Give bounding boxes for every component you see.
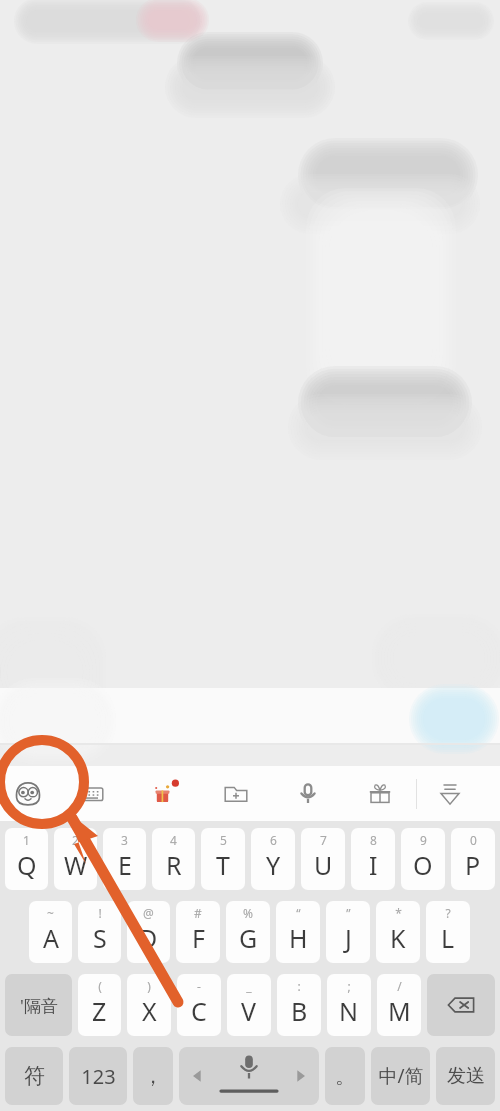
button[interactable]: / xyxy=(377,974,421,1036)
button[interactable]: “ xyxy=(276,901,320,963)
staticText: “ xyxy=(296,905,301,921)
staticText: X xyxy=(142,994,157,1028)
button[interactable]: '隔音 xyxy=(5,974,72,1036)
staticText: _ xyxy=(246,978,252,994)
button[interactable]: ~ xyxy=(29,901,72,963)
staticText: 9 xyxy=(420,832,427,848)
button[interactable]: Voice input xyxy=(272,766,344,821)
staticText: 0 xyxy=(470,832,477,848)
staticText: ; xyxy=(347,978,351,994)
button[interactable]: 4 xyxy=(152,828,195,890)
staticText: 。 xyxy=(335,1064,355,1089)
staticText: R xyxy=(166,848,182,882)
staticText: T xyxy=(216,848,230,882)
button[interactable]: 符 xyxy=(5,1047,63,1105)
button[interactable]: Space / voice input xyxy=(179,1047,319,1105)
staticText: 8 xyxy=(370,832,377,848)
staticText: '隔音 xyxy=(20,994,58,1017)
staticText: D xyxy=(139,921,158,955)
button[interactable]: : xyxy=(277,974,321,1036)
button[interactable]: 123 xyxy=(69,1047,127,1105)
button[interactable]: 6 xyxy=(251,828,295,890)
button[interactable]: # xyxy=(176,901,220,963)
staticText: 4 xyxy=(170,832,177,848)
staticText: 2 xyxy=(72,832,79,848)
staticText: O xyxy=(413,848,433,882)
button[interactable]: _ xyxy=(227,974,271,1036)
button[interactable]: 5 xyxy=(201,828,245,890)
button[interactable]: ? xyxy=(426,901,470,963)
button[interactable]: Stickers xyxy=(128,766,200,821)
button[interactable]: % xyxy=(226,901,270,963)
staticText: W xyxy=(64,848,88,882)
button[interactable]: ( xyxy=(78,974,121,1036)
staticText: 123 xyxy=(81,1063,116,1090)
button[interactable]: ; xyxy=(327,974,371,1036)
staticText: U xyxy=(314,848,333,882)
staticText: 5 xyxy=(220,832,227,848)
staticText: 中/简 xyxy=(378,1063,424,1089)
staticText: I xyxy=(369,848,378,882)
staticText: G xyxy=(239,921,258,955)
button[interactable]: ) xyxy=(127,974,171,1036)
button[interactable]: 中/简 xyxy=(371,1047,430,1105)
staticText: % xyxy=(243,905,253,921)
staticText: F xyxy=(192,921,205,955)
button[interactable]: ! xyxy=(78,901,121,963)
staticText: M xyxy=(388,994,411,1028)
button[interactable]: * xyxy=(376,901,420,963)
staticText: B xyxy=(291,994,308,1028)
staticText: 6 xyxy=(270,832,277,848)
button[interactable]: - xyxy=(177,974,221,1036)
button[interactable]: 7 xyxy=(301,828,345,890)
staticText: ) xyxy=(147,978,151,994)
staticText: * xyxy=(395,905,402,921)
staticText: ， xyxy=(143,1064,163,1089)
staticText: 3 xyxy=(121,832,128,848)
staticText: A xyxy=(43,921,59,955)
staticText: S xyxy=(93,921,107,955)
staticText: ( xyxy=(98,978,102,994)
button[interactable]: 1 xyxy=(5,828,48,890)
staticText: N xyxy=(339,994,359,1028)
button[interactable]: Keyboard xyxy=(56,766,128,821)
staticText: K xyxy=(390,921,406,955)
staticText: 1 xyxy=(23,832,30,848)
button[interactable]: ， xyxy=(133,1047,173,1105)
staticText: / xyxy=(397,978,402,994)
button[interactable]: Gift xyxy=(344,766,416,821)
staticText: E xyxy=(118,848,132,882)
staticText: Y xyxy=(266,848,281,882)
staticText: Z xyxy=(92,994,107,1028)
staticText: 符 xyxy=(24,1063,45,1089)
staticText: ” xyxy=(346,905,351,921)
staticText: C xyxy=(191,994,207,1028)
button[interactable]: Backspace xyxy=(427,974,495,1036)
staticText: - xyxy=(197,978,201,994)
button[interactable]: ” xyxy=(326,901,370,963)
staticText: Q xyxy=(17,848,37,882)
staticText: ~ xyxy=(47,905,54,921)
button[interactable]: 0 xyxy=(451,828,495,890)
button[interactable]: 9 xyxy=(401,828,445,890)
staticText: @ xyxy=(143,905,154,921)
button[interactable]: Add folder xyxy=(200,766,272,821)
staticText: # xyxy=(194,905,202,921)
button[interactable]: 。 xyxy=(325,1047,365,1105)
button[interactable]: 2 xyxy=(54,828,97,890)
staticText: 发送 xyxy=(447,1064,485,1088)
button[interactable]: @ xyxy=(127,901,170,963)
staticText: ! xyxy=(98,905,102,921)
staticText: P xyxy=(465,848,481,882)
staticText: ? xyxy=(445,905,451,921)
staticText: L xyxy=(441,921,455,955)
staticText: 7 xyxy=(320,832,327,848)
button[interactable]: 3 xyxy=(103,828,146,890)
button[interactable]: 8 xyxy=(351,828,395,890)
button[interactable]: Emoji xyxy=(0,766,56,821)
staticText: J xyxy=(345,921,352,955)
button[interactable]: Hide keyboard xyxy=(417,766,483,821)
button[interactable]: 发送 xyxy=(436,1047,495,1105)
staticText: H xyxy=(289,921,308,955)
staticText: V xyxy=(241,994,257,1028)
